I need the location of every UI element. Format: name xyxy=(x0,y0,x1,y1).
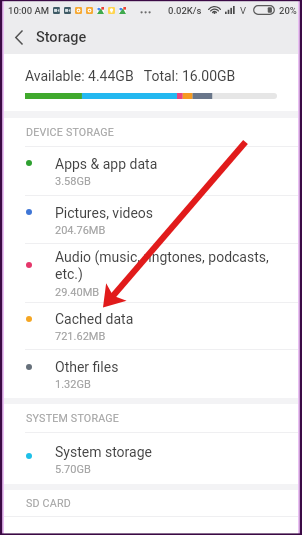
staticText: 1.32GB xyxy=(55,378,91,391)
staticText: DEVICE STORAGE xyxy=(26,126,115,139)
staticText: Storage xyxy=(36,29,87,46)
button[interactable]: Apps & app data xyxy=(0,147,302,195)
staticText: System storage xyxy=(55,444,152,460)
staticText: 29.40MB xyxy=(55,286,100,299)
staticText: 5.70GB xyxy=(55,463,91,476)
button[interactable]: Cached data xyxy=(0,303,302,349)
staticText: 3.58GB xyxy=(55,175,91,188)
staticText: Available: 4.44GB Total: 16.00GB xyxy=(25,68,236,84)
button[interactable]: Navigate up xyxy=(0,20,36,54)
staticText: Cached data xyxy=(55,311,134,327)
staticText: 721.62MB xyxy=(55,330,106,343)
staticText: 0.02K/s xyxy=(168,5,202,16)
button[interactable]: Audio (music, ringtones, podcasts, etc.) xyxy=(0,244,302,302)
button[interactable]: Pictures, videos xyxy=(0,196,302,243)
staticText: SYSTEM STORAGE xyxy=(26,412,120,425)
staticText: Pictures, videos xyxy=(55,205,154,221)
staticText: 204.76MB xyxy=(55,224,106,237)
staticText: Other files xyxy=(55,359,119,375)
staticText: Apps & app data xyxy=(55,156,158,172)
staticText: 10:00 AM xyxy=(8,5,50,16)
staticText: Audio (music, ringtones, podcasts, etc.) xyxy=(55,249,278,283)
button[interactable]: Other files xyxy=(0,350,302,398)
staticText: SD CARD xyxy=(26,497,71,510)
staticText: V xyxy=(240,5,247,16)
button[interactable]: System storage xyxy=(0,433,302,484)
staticText: 20% xyxy=(279,5,297,16)
